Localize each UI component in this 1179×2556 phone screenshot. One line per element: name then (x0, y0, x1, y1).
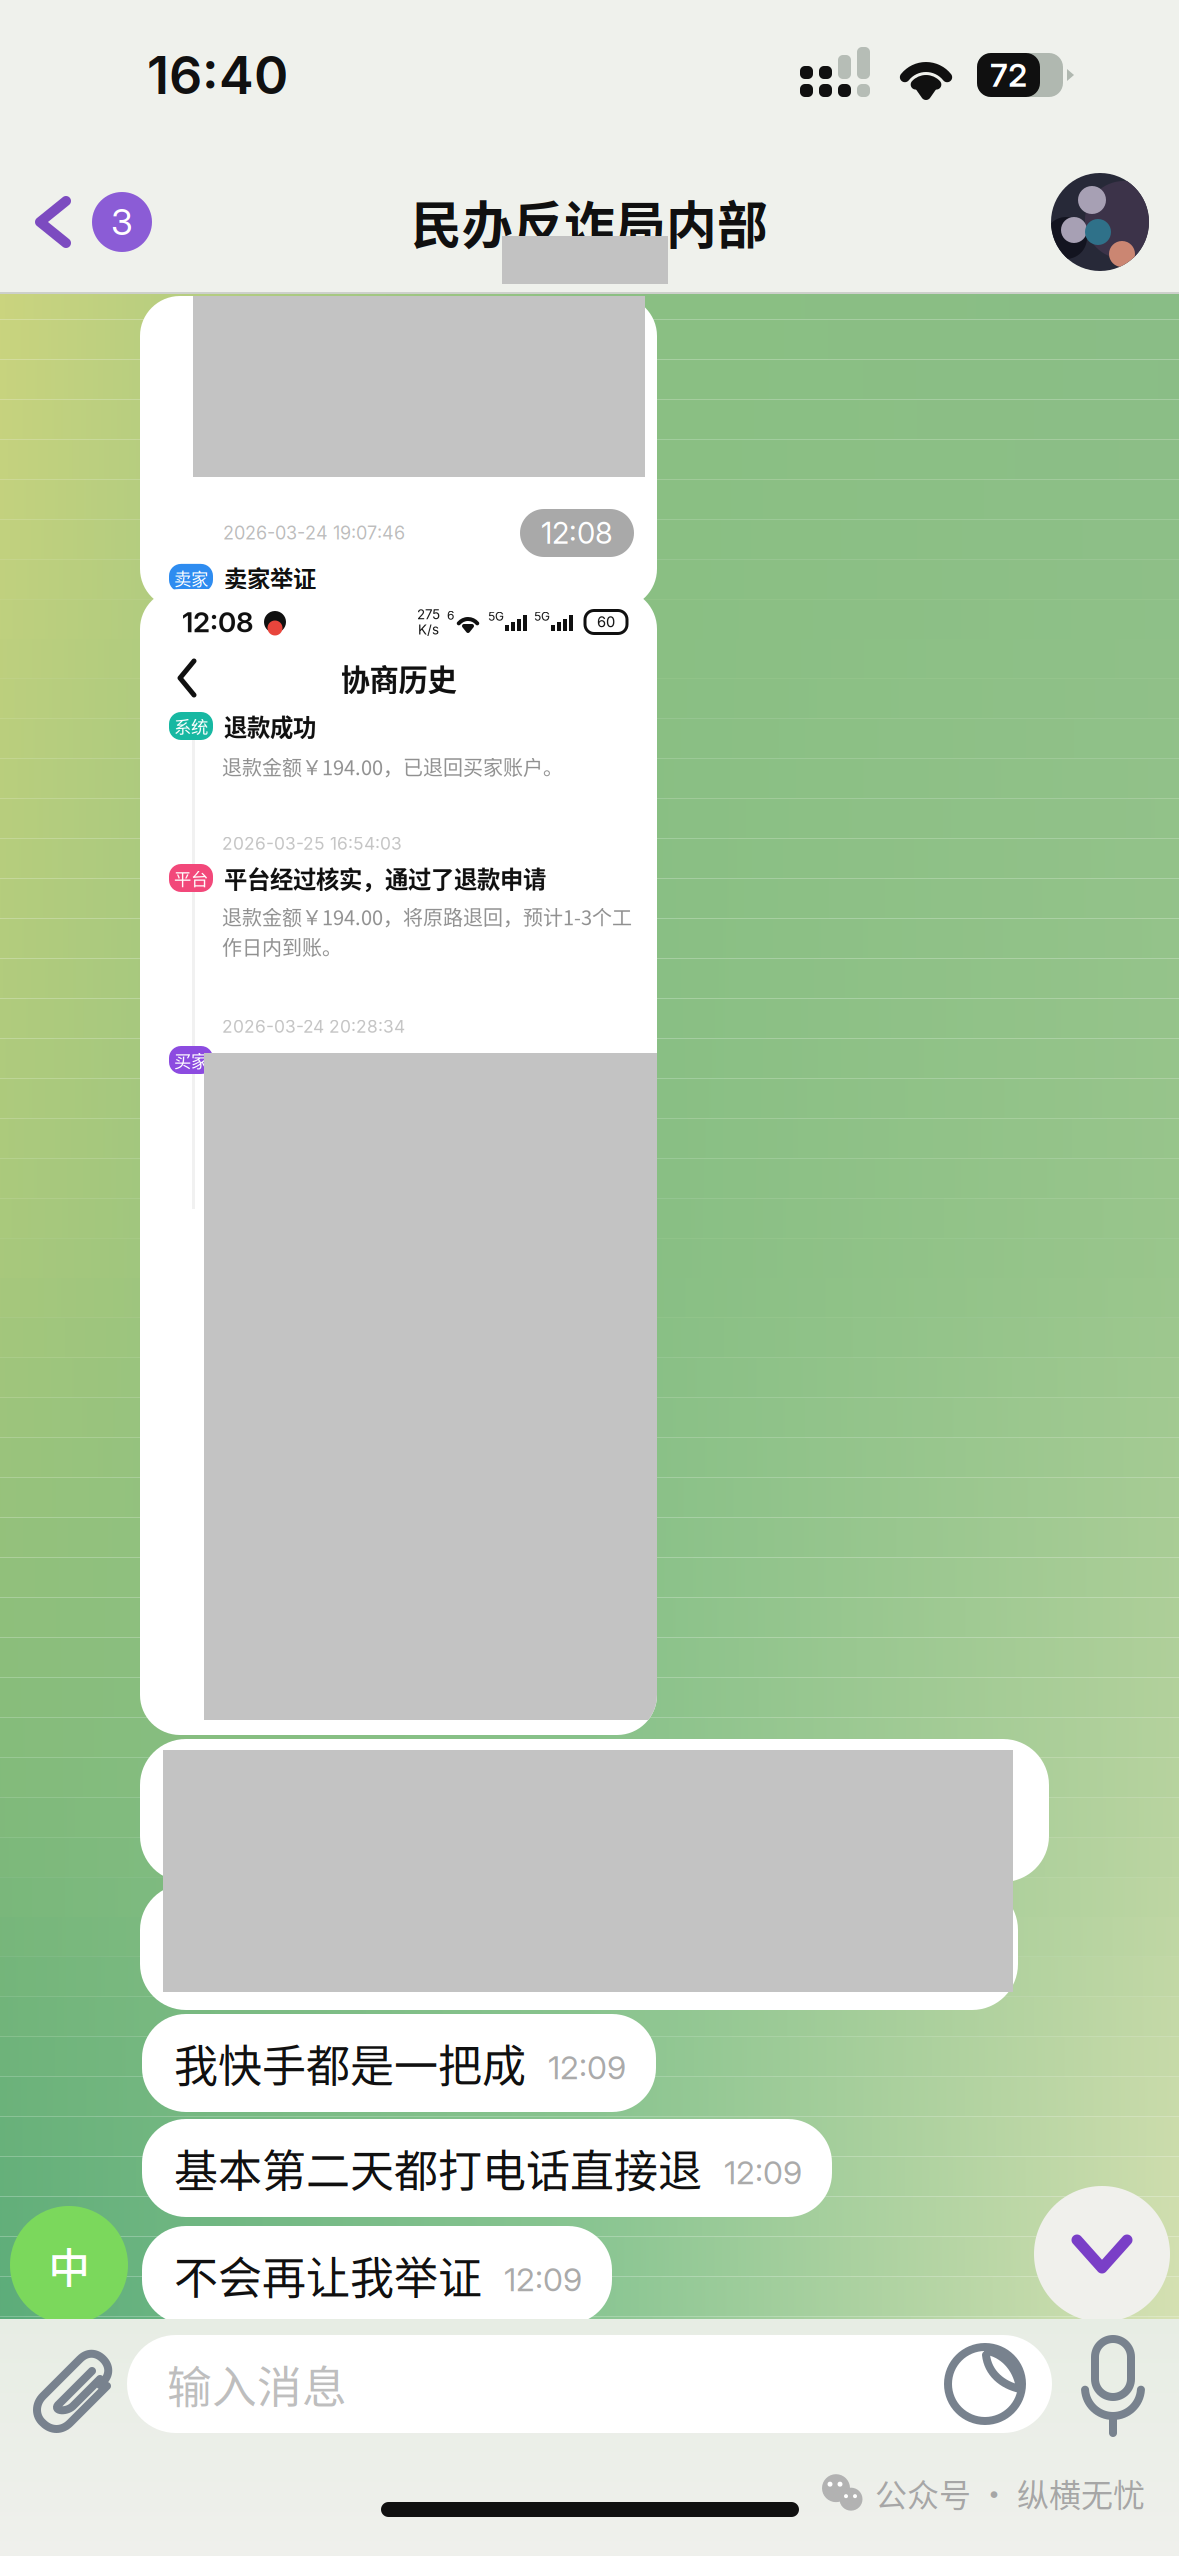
staticText: 我快手都是一把成 (174, 2031, 526, 2095)
button[interactable]: 输入消息 (127, 2335, 1052, 2433)
staticText: 5G (488, 609, 504, 624)
staticText: 60 (597, 613, 615, 631)
staticText: K/s (418, 621, 439, 638)
staticText: 协商历史 (340, 657, 456, 699)
staticText: 中 (48, 2235, 89, 2295)
staticText: 输入消息 (167, 2352, 347, 2416)
staticText: 72 (990, 56, 1027, 94)
button[interactable]: Attach (22, 2339, 122, 2435)
staticText: 12:09 (504, 2260, 582, 2299)
staticText: 退款金额￥194.00，已退回买家账户。 (222, 752, 563, 781)
staticText: 平台经过核实，通过了退款申请 (224, 861, 546, 895)
staticText: 12:09 (548, 2048, 626, 2087)
staticText: 12:09 (724, 2153, 802, 2192)
staticText: 卖家举证 (224, 561, 316, 595)
staticText: 系统 (174, 713, 208, 739)
staticText: 12:08 (182, 605, 254, 639)
staticText: 平台 (174, 865, 208, 891)
staticText: 16:40 (147, 43, 288, 106)
staticText: 作日内到账。 (222, 932, 342, 961)
staticText: 6 (447, 608, 454, 623)
staticText: 275 (417, 606, 440, 622)
button[interactable]: Group profile (1051, 163, 1179, 281)
button[interactable]: Voice message (1073, 2331, 1153, 2437)
staticText: 退款金额￥194.00，将原路退回，预计1-3个工 (222, 902, 632, 931)
staticText: 退款成功 (224, 709, 316, 743)
staticText: 12:08 (541, 515, 613, 551)
staticText: 3 (111, 200, 133, 244)
button[interactable]: Back (0, 174, 172, 270)
staticText: 5G (534, 609, 550, 624)
staticText: 2026-03-25 16:54:03 (222, 833, 402, 854)
staticText: 基本第二天都打电话直接退 (174, 2136, 702, 2200)
button[interactable]: Scroll to latest (1034, 2186, 1170, 2322)
staticText: 卖家 (174, 565, 208, 590)
staticText: 不会再让我举证 (174, 2243, 482, 2307)
staticText: 民办反诈局内部 (411, 185, 768, 259)
staticText: 公众号 · 纵横无忧 (875, 2470, 1145, 2516)
staticText: 2026-03-24 19:07:46 (223, 522, 405, 544)
staticText: 2026-03-24 20:28:34 (222, 1016, 405, 1037)
staticText: 买家 (174, 1047, 208, 1073)
